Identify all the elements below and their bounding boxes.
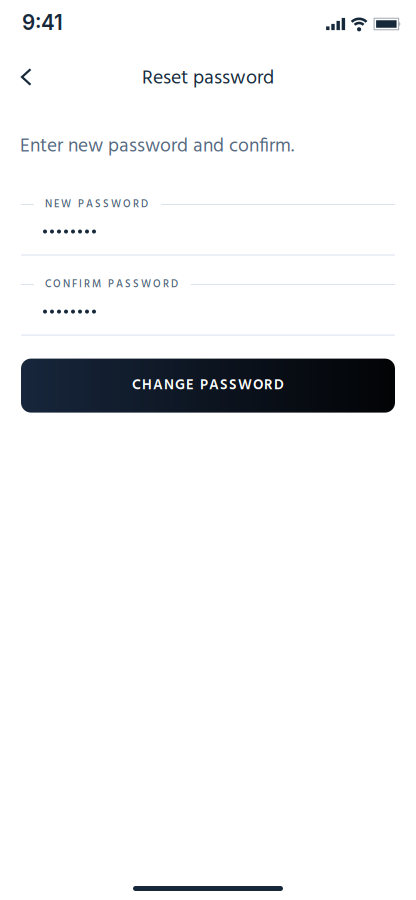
staticText: C O N F I R M P A S S W O R D bbox=[45, 276, 178, 293]
button[interactable]: Change Password bbox=[21, 359, 395, 413]
button[interactable]: Back bbox=[0, 57, 30, 97]
staticText: N E W P A S S W O R D bbox=[45, 196, 148, 213]
button[interactable]: New password bbox=[0, 196, 416, 256]
staticText: Reset password bbox=[142, 63, 274, 94]
staticText: C H A N G E P A S S W O R D bbox=[132, 374, 284, 397]
staticText: 9:41 bbox=[22, 10, 63, 35]
staticText: Enter new password and confirm. bbox=[20, 131, 294, 162]
button[interactable]: Confirm password bbox=[0, 276, 416, 336]
